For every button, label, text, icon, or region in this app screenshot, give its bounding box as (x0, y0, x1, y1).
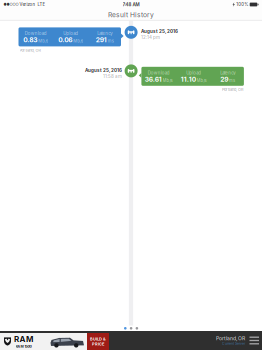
staticText: 36.61 (145, 75, 162, 83)
staticText: Latency (220, 70, 235, 75)
button[interactable]: Portland, OR (0, 331, 262, 350)
button[interactable]: RAM (0, 333, 109, 350)
staticText: 291 (96, 36, 107, 44)
staticText: Download (25, 31, 47, 36)
staticText: PRICE (92, 342, 104, 346)
button[interactable]: August 25, 2016 (141, 28, 189, 40)
staticText: ●●○○○ (3, 2, 18, 7)
staticText: 100% (236, 2, 248, 7)
staticText: Portland, OR (216, 335, 245, 341)
button[interactable]: August 25, 2016 (74, 67, 122, 79)
staticText: August 25, 2016 (85, 67, 122, 73)
staticText: RAM (14, 334, 33, 344)
staticText: Upload (186, 70, 201, 75)
staticText: Portland, OR (19, 48, 40, 53)
staticText: 7:48 AM (122, 2, 139, 7)
staticText: August 25, 2016 (141, 28, 178, 34)
staticText: BUILD & (90, 336, 106, 341)
staticText: Mb/s (197, 78, 207, 83)
staticText: RAM 1500 (15, 344, 31, 349)
staticText: 11.10 (181, 75, 196, 83)
staticText: Current Server (222, 341, 245, 346)
staticText: Portland, OR (222, 87, 243, 92)
staticText: 11:58 am (103, 73, 122, 79)
staticText: Upload (63, 31, 78, 36)
staticText: Result History (108, 11, 154, 19)
staticText: Latency (97, 31, 112, 36)
staticText: Mb/s (38, 38, 48, 43)
staticText: 12:14 pm (141, 34, 160, 40)
staticText: Mb/s (73, 38, 83, 43)
staticText: 0.83 (23, 36, 37, 44)
staticText: Download (148, 70, 170, 75)
staticText: Verizon LTE (18, 2, 45, 7)
staticText: 0.06 (58, 36, 72, 44)
staticText: 29 (220, 75, 228, 83)
staticText: ms (229, 78, 235, 83)
button[interactable]: Download (18, 27, 124, 53)
staticText: Mb/s (163, 78, 173, 83)
staticText: ms (108, 38, 114, 43)
button[interactable]: Download (138, 67, 244, 92)
